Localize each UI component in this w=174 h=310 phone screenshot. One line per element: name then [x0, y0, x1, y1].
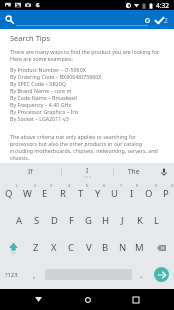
staticText: H: [102, 214, 110, 227]
staticText: C: [68, 241, 75, 254]
button[interactable]: L: [148, 207, 165, 234]
staticText: O: [145, 187, 153, 200]
button[interactable]: U: [106, 180, 123, 207]
staticText: N: [119, 241, 127, 254]
staticText: D: [51, 214, 58, 227]
staticText: I: [130, 187, 134, 200]
staticText: ,: [33, 269, 36, 280]
staticText: I: [86, 166, 89, 175]
staticText: L: [154, 214, 159, 227]
staticText: 5: [86, 183, 89, 188]
button[interactable]: S: [28, 207, 46, 234]
staticText: F: [69, 214, 74, 227]
staticText: .: [140, 269, 143, 280]
button[interactable]: Home: [77, 289, 98, 310]
staticText: If: [28, 167, 33, 176]
staticText: ?123: [5, 271, 18, 279]
button[interactable]: B: [97, 234, 114, 261]
staticText: 6: [103, 183, 106, 188]
button[interactable]: X: [45, 234, 63, 261]
button[interactable]: W: [18, 180, 36, 207]
staticText: S: [34, 214, 40, 227]
button[interactable]: Q: [0, 180, 18, 207]
button[interactable]: Period: [132, 261, 150, 288]
staticText: 8: [136, 183, 139, 188]
button[interactable]: E: [36, 180, 54, 207]
button[interactable]: O: [140, 180, 157, 207]
staticText: 2: [164, 16, 168, 25]
staticText: The above criteria not only applies to s…: [10, 133, 158, 161]
button[interactable]: If: [0, 163, 61, 180]
button[interactable]: H: [97, 207, 114, 234]
staticText: G: [85, 214, 92, 227]
button[interactable]: F: [63, 207, 80, 234]
staticText: V: [86, 241, 92, 254]
staticText: 9: [155, 183, 158, 188]
staticText: 0: [171, 183, 174, 188]
button[interactable]: C: [63, 234, 80, 261]
staticText: 2: [34, 183, 37, 188]
staticText: 1: [15, 183, 18, 188]
staticText: B: [102, 241, 109, 254]
button[interactable]: D: [46, 207, 63, 234]
button[interactable]: Y: [89, 180, 106, 207]
staticText: Q: [5, 187, 13, 200]
button[interactable]: I: [123, 180, 140, 207]
staticText: 7: [120, 183, 123, 188]
staticText: There are many ways to find the product …: [10, 48, 160, 62]
staticText: 3: [50, 183, 53, 188]
button[interactable]: M: [131, 234, 148, 261]
button[interactable]: Clear: [140, 13, 154, 27]
staticText: T: [78, 187, 84, 200]
staticText: W: [23, 187, 32, 200]
button[interactable]: V: [80, 234, 97, 261]
button[interactable]: J: [114, 207, 131, 234]
button[interactable]: A: [10, 207, 28, 234]
staticText: Search Tips: [10, 33, 50, 43]
button[interactable]: K: [131, 207, 148, 234]
staticText: X: [51, 241, 57, 254]
staticText: 4:32: [156, 1, 170, 10]
button[interactable]: Back: [28, 289, 49, 310]
button[interactable]: Search: [2, 12, 17, 27]
button[interactable]: G: [80, 207, 97, 234]
button[interactable]: P: [157, 180, 174, 207]
button[interactable]: Shift: [0, 234, 27, 261]
button[interactable]: Space: [45, 261, 132, 288]
staticText: M: [135, 241, 144, 254]
staticText: Y: [95, 187, 101, 200]
staticText: A: [16, 214, 23, 227]
button[interactable]: Recents: [125, 289, 146, 310]
button[interactable]: N: [114, 234, 131, 261]
button[interactable]: R: [54, 180, 72, 207]
staticText: U: [111, 187, 118, 200]
button[interactable]: Voice input: [154, 163, 174, 180]
button[interactable]: ?123: [0, 261, 23, 288]
staticText: P: [163, 187, 169, 200]
staticText: J: [121, 214, 124, 227]
staticText: Z: [33, 241, 39, 254]
button[interactable]: The: [114, 163, 154, 180]
button[interactable]: Backspace: [148, 234, 174, 261]
button[interactable]: Enter: [150, 261, 174, 288]
button[interactable]: Comma: [23, 261, 45, 288]
button[interactable]: T: [72, 180, 89, 207]
staticText: E: [42, 187, 48, 200]
staticText: R: [60, 187, 66, 200]
button[interactable]: Done: [154, 16, 169, 25]
staticText: 4: [68, 183, 71, 188]
button[interactable]: Z: [27, 234, 45, 261]
button[interactable]: I: [62, 163, 113, 180]
staticText: K: [137, 214, 143, 227]
staticText: The: [128, 167, 140, 176]
staticText: By Product Number – i7-5960X By Ordering…: [10, 66, 102, 122]
